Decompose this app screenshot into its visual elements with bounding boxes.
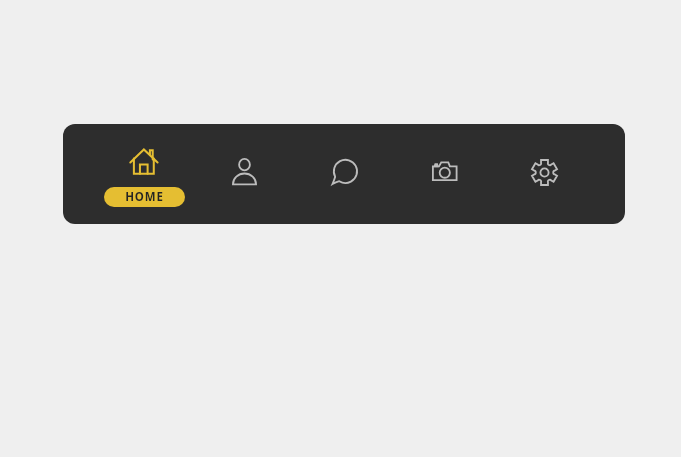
button[interactable]: HOME — [98, 124, 190, 224]
button[interactable]: Profile — [198, 124, 290, 224]
button[interactable]: Settings — [498, 124, 590, 224]
button[interactable]: Chat — [298, 124, 390, 224]
button[interactable]: Camera — [398, 124, 490, 224]
staticText: HOME — [125, 189, 164, 205]
